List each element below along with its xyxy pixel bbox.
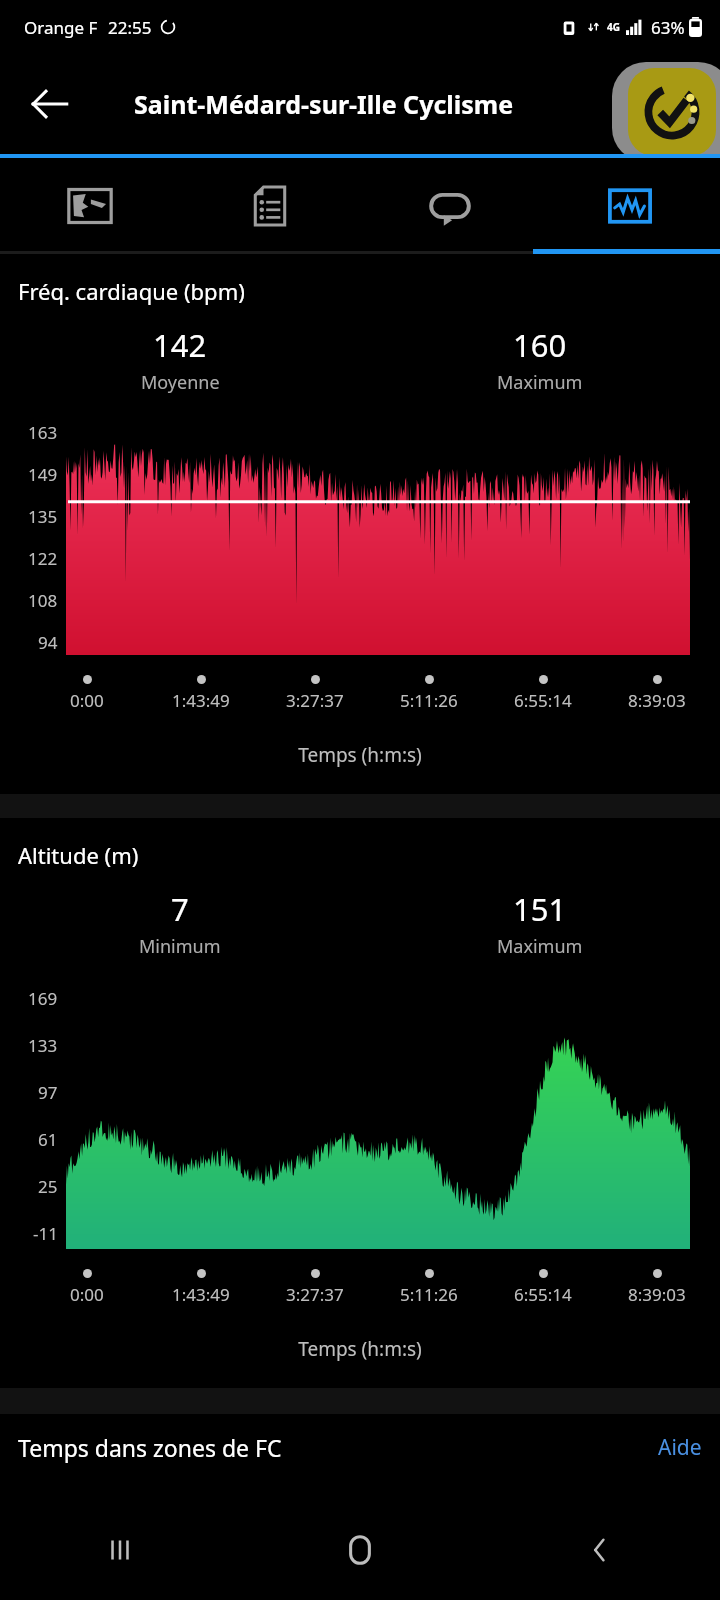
staticText: Temps (h:m:s) bbox=[0, 1336, 720, 1362]
staticText: Orange F bbox=[24, 16, 98, 39]
staticText: Minimum bbox=[139, 934, 221, 959]
staticText: Altitude (m) bbox=[18, 840, 139, 870]
staticText: Maximum bbox=[497, 934, 583, 959]
staticText: 142 bbox=[153, 324, 207, 366]
button[interactable]: Graphiques bbox=[540, 158, 720, 254]
staticText: 94 bbox=[38, 631, 58, 654]
staticText: 97 bbox=[38, 1081, 58, 1104]
staticText: Moyenne bbox=[141, 370, 220, 395]
button[interactable]: Détails bbox=[180, 158, 360, 254]
staticText: 1:43:49 bbox=[172, 689, 230, 712]
button[interactable]: Application bbox=[612, 62, 720, 162]
staticText: 5:11:26 bbox=[400, 1283, 458, 1306]
staticText: 8:39:03 bbox=[628, 689, 686, 712]
staticText: 1:43:49 bbox=[172, 1283, 230, 1306]
staticText: 3:27:37 bbox=[286, 689, 344, 712]
staticText: Temps (h:m:s) bbox=[0, 742, 720, 768]
staticText: 169 bbox=[28, 987, 58, 1010]
staticText: 163 bbox=[28, 421, 58, 444]
staticText: 7 bbox=[171, 888, 189, 930]
staticText: 22:55 bbox=[108, 16, 152, 39]
staticText: 149 bbox=[28, 463, 58, 486]
staticText: 61 bbox=[38, 1128, 58, 1151]
staticText: 4G bbox=[607, 20, 620, 34]
staticText: 25 bbox=[38, 1175, 58, 1198]
staticText: 0:00 bbox=[70, 1283, 104, 1306]
button[interactable]: Accueil bbox=[240, 1500, 480, 1600]
staticText: 133 bbox=[28, 1034, 58, 1057]
staticText: Saint-Médard-sur-Ille Cyclisme bbox=[134, 87, 514, 121]
staticText: Maximum bbox=[497, 370, 583, 395]
staticText: Temps dans zones de FC bbox=[18, 1432, 282, 1463]
button[interactable]: Tours bbox=[360, 158, 540, 254]
button[interactable]: Carte bbox=[0, 158, 180, 254]
staticText: 6:55:14 bbox=[514, 689, 572, 712]
staticText: 8:39:03 bbox=[628, 1283, 686, 1306]
staticText: 63% bbox=[651, 16, 685, 39]
staticText: 151 bbox=[513, 888, 567, 930]
staticText: 5:11:26 bbox=[400, 689, 458, 712]
button[interactable]: Applications récentes bbox=[0, 1500, 240, 1600]
button[interactable]: Retour bbox=[480, 1500, 720, 1600]
staticText: Fréq. cardiaque (bpm) bbox=[18, 276, 245, 306]
staticText: 160 bbox=[513, 324, 567, 366]
staticText: 0:00 bbox=[70, 689, 104, 712]
button[interactable]: Aide bbox=[658, 1433, 702, 1462]
staticText: 135 bbox=[28, 505, 58, 528]
button[interactable]: Retour bbox=[22, 76, 78, 132]
staticText: 6:55:14 bbox=[514, 1283, 572, 1306]
staticText: -11 bbox=[33, 1222, 58, 1245]
staticText: 3:27:37 bbox=[286, 1283, 344, 1306]
staticText: Aide bbox=[658, 1433, 702, 1462]
staticText: 108 bbox=[28, 589, 58, 612]
staticText: 122 bbox=[28, 547, 58, 570]
